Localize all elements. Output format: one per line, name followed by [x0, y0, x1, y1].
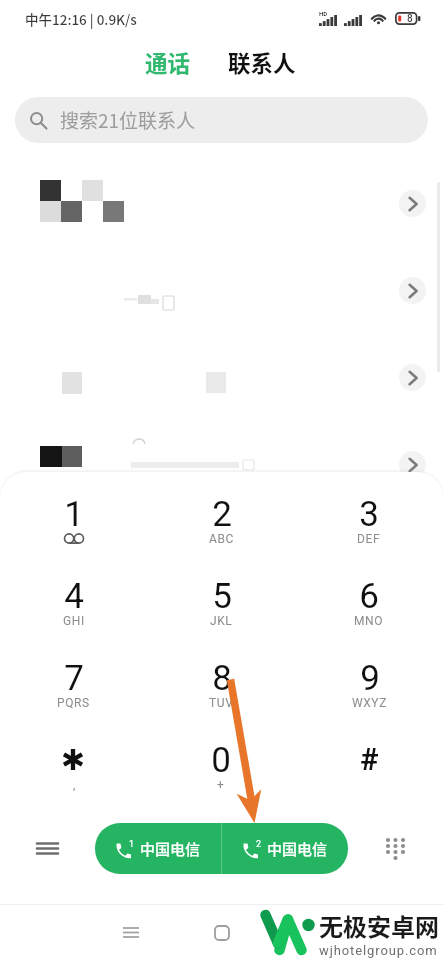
- button[interactable]: 0: [147, 740, 295, 822]
- staticText: 1: [64, 494, 84, 532]
- button[interactable]: 1: [0, 494, 147, 576]
- staticText: 2: [256, 839, 262, 850]
- button[interactable]: 8: [147, 658, 295, 740]
- button[interactable]: Open call details: [399, 277, 426, 304]
- button[interactable]: 2: [147, 494, 295, 576]
- button[interactable]: #: [295, 740, 443, 822]
- staticText: 1: [129, 839, 135, 850]
- button[interactable]: Open call details: [0, 421, 443, 508]
- staticText: PQRS: [57, 696, 90, 709]
- button[interactable]: 5: [147, 576, 295, 658]
- staticText: TUV: [209, 696, 234, 709]
- button[interactable]: 搜索21位联系人: [15, 97, 428, 143]
- button[interactable]: 联系人: [218, 40, 306, 85]
- staticText: DEF: [357, 532, 381, 545]
- staticText: ,: [73, 778, 76, 791]
- staticText: 9: [360, 658, 380, 696]
- button[interactable]: 通话: [135, 40, 201, 85]
- button[interactable]: Home: [201, 912, 242, 954]
- button[interactable]: Open call details: [399, 190, 426, 217]
- staticText: 2: [212, 494, 232, 532]
- staticText: ABC: [209, 532, 234, 545]
- staticText: 8: [407, 13, 413, 25]
- staticText: 中国电信: [140, 838, 201, 860]
- staticText: 中午12:16 | 0.9K/s: [25, 9, 137, 29]
- staticText: wjhotelgroup.com: [319, 943, 438, 958]
- staticText: 通话: [145, 46, 191, 79]
- staticText: JKL: [210, 614, 233, 627]
- staticText: HD: [319, 10, 328, 17]
- button[interactable]: Open call details: [399, 364, 426, 391]
- button[interactable]: Open call details: [0, 334, 443, 421]
- staticText: 8: [212, 658, 232, 696]
- button[interactable]: 6: [295, 576, 443, 658]
- button[interactable]: ,: [0, 740, 147, 822]
- staticText: MNO: [354, 614, 384, 627]
- staticText: 4: [64, 576, 84, 614]
- button[interactable]: 1: [95, 823, 221, 874]
- button[interactable]: 9: [295, 658, 443, 740]
- staticText: 7: [64, 658, 84, 696]
- button[interactable]: Open call details: [0, 160, 443, 247]
- staticText: 无极安卓网: [319, 908, 439, 943]
- staticText: 搜索21位联系人: [60, 106, 196, 134]
- staticText: 6: [359, 576, 379, 614]
- staticText: 5: [212, 576, 232, 614]
- staticText: GHI: [63, 614, 85, 627]
- staticText: 0: [211, 740, 231, 778]
- staticText: 中国电信: [267, 838, 328, 860]
- staticText: +: [217, 778, 225, 791]
- button[interactable]: Open call details: [399, 451, 426, 478]
- button[interactable]: 7: [0, 658, 147, 740]
- staticText: 3: [359, 494, 379, 532]
- button[interactable]: Hide keypad: [348, 823, 443, 874]
- button[interactable]: 4: [0, 576, 147, 658]
- staticText: 联系人: [228, 46, 296, 79]
- button[interactable]: Recents: [110, 911, 151, 953]
- button[interactable]: Open call details: [0, 247, 443, 334]
- staticText: WXYZ: [352, 696, 387, 709]
- button[interactable]: 2: [222, 823, 348, 874]
- button[interactable]: Call log menu: [0, 823, 95, 874]
- button[interactable]: 3: [295, 494, 443, 576]
- staticText: #: [360, 741, 379, 777]
